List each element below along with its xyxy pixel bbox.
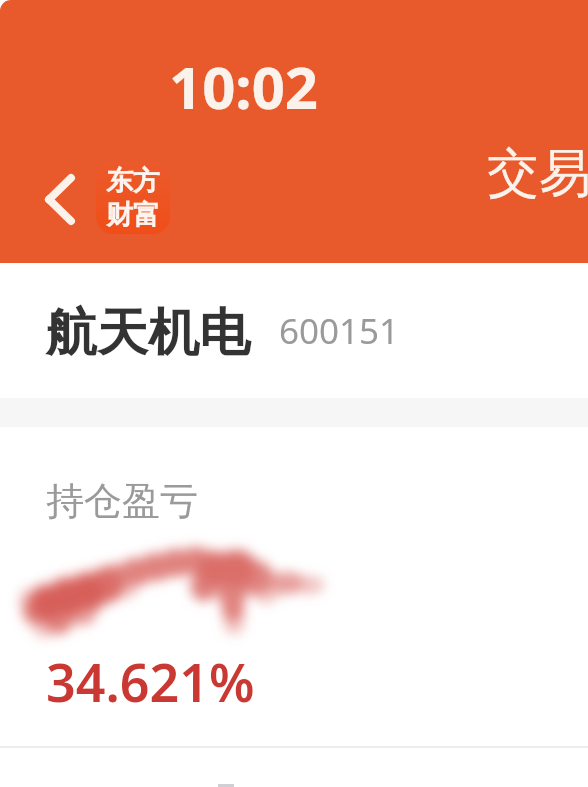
- button[interactable]: 东方财富 home: [96, 162, 170, 234]
- staticText: 持仓盈亏: [46, 477, 198, 525]
- button[interactable]: 交易: [478, 134, 588, 204]
- staticText: 航天机电: [46, 301, 250, 365]
- staticText: 10:02: [169, 47, 319, 126]
- staticText: 34.621%: [46, 646, 255, 717]
- button[interactable]: 航天机电: [0, 263, 588, 398]
- staticText: 东方: [106, 164, 160, 198]
- staticText: 600151: [279, 307, 400, 355]
- staticText: 交易: [487, 141, 588, 207]
- staticText: 财富: [106, 198, 160, 232]
- button[interactable]: Back: [28, 160, 92, 238]
